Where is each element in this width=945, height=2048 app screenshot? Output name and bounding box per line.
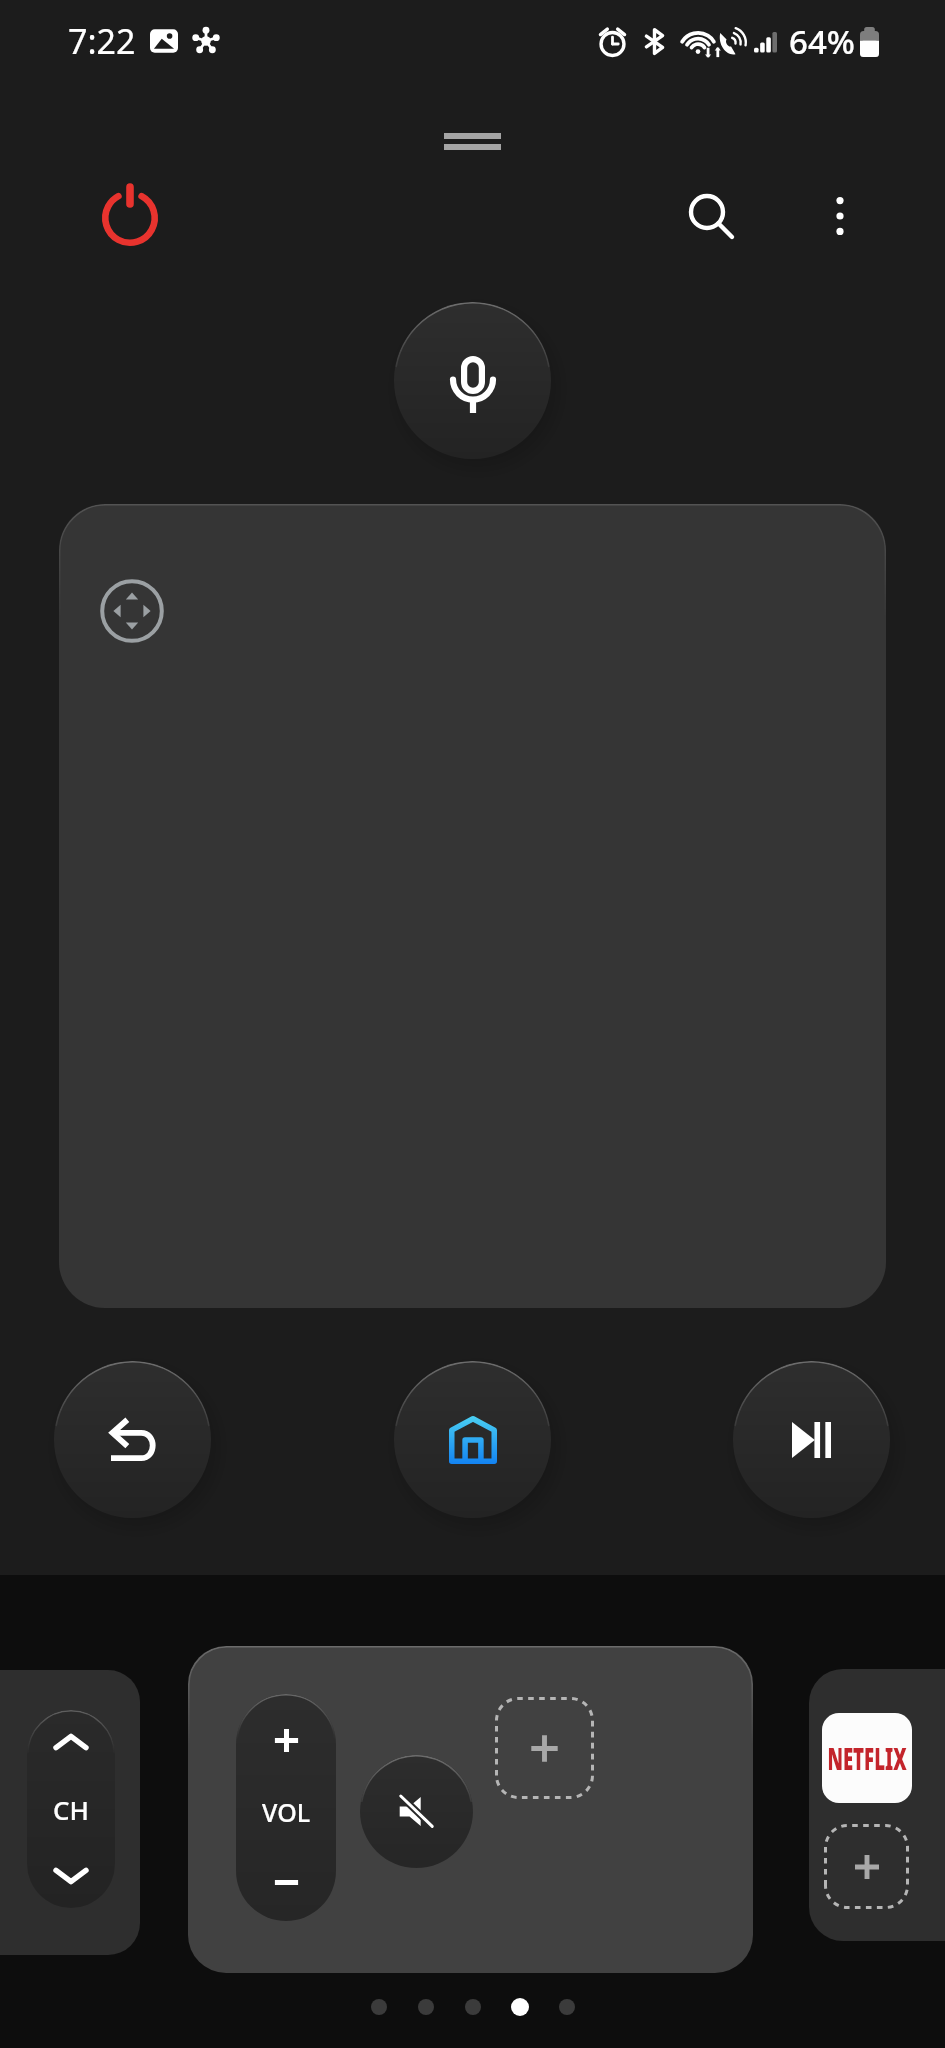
button[interactable]: Mute (360, 1755, 473, 1868)
button[interactable]: More options (795, 171, 885, 261)
staticText: CH (53, 1792, 89, 1827)
button[interactable]: Channel (27, 1710, 115, 1908)
staticText: 7:22 (68, 18, 136, 64)
button[interactable]: Search (665, 171, 755, 261)
staticText: 64% (789, 19, 855, 64)
button[interactable]: Home (394, 1361, 551, 1518)
button[interactable]: Volume (236, 1694, 336, 1921)
button[interactable]: Add button (495, 1697, 594, 1799)
button[interactable]: Play pause (733, 1361, 890, 1518)
button[interactable]: Channel (0, 1670, 140, 1955)
button[interactable]: Netflix (822, 1713, 912, 1803)
button[interactable]: Touchpad (59, 504, 886, 1308)
button[interactable]: Back (54, 1361, 211, 1518)
button[interactable]: Power (85, 169, 175, 259)
button[interactable]: Voice search (394, 302, 551, 459)
staticText: VOL (262, 1795, 311, 1829)
staticText: NETFLIX (822, 1738, 912, 1779)
button[interactable]: Add app (824, 1824, 909, 1909)
